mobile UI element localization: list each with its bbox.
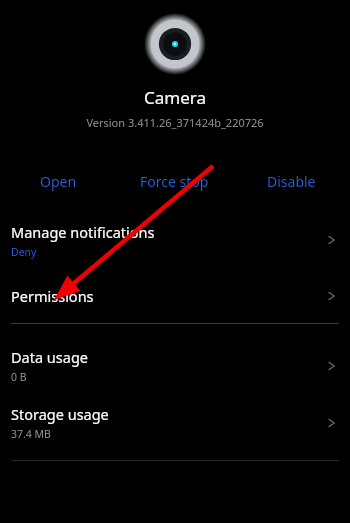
staticText: Deny [11, 245, 37, 259]
staticText: Disable [267, 172, 316, 191]
button[interactable]: Disable [233, 164, 350, 198]
staticText: Permissions [11, 286, 94, 306]
button[interactable]: Force stop [116, 164, 233, 198]
staticText: 0 B [11, 370, 27, 384]
staticText: Version 3.411.26_371424b_220726 [0, 115, 350, 130]
staticText: Force stop [140, 172, 209, 191]
button[interactable]: Open [0, 164, 116, 198]
button[interactable]: Permissions [0, 269, 350, 323]
staticText: Data usage [11, 347, 88, 367]
staticText: Open [40, 172, 77, 191]
button[interactable]: Data usage [0, 337, 350, 394]
staticText: 37.4 MB [11, 427, 51, 441]
staticText: Storage usage [11, 404, 109, 424]
button[interactable]: Manage notifications [0, 211, 350, 269]
staticText: Manage notifications [11, 222, 155, 242]
staticText: Camera [0, 86, 350, 109]
button[interactable]: Storage usage [0, 394, 350, 451]
